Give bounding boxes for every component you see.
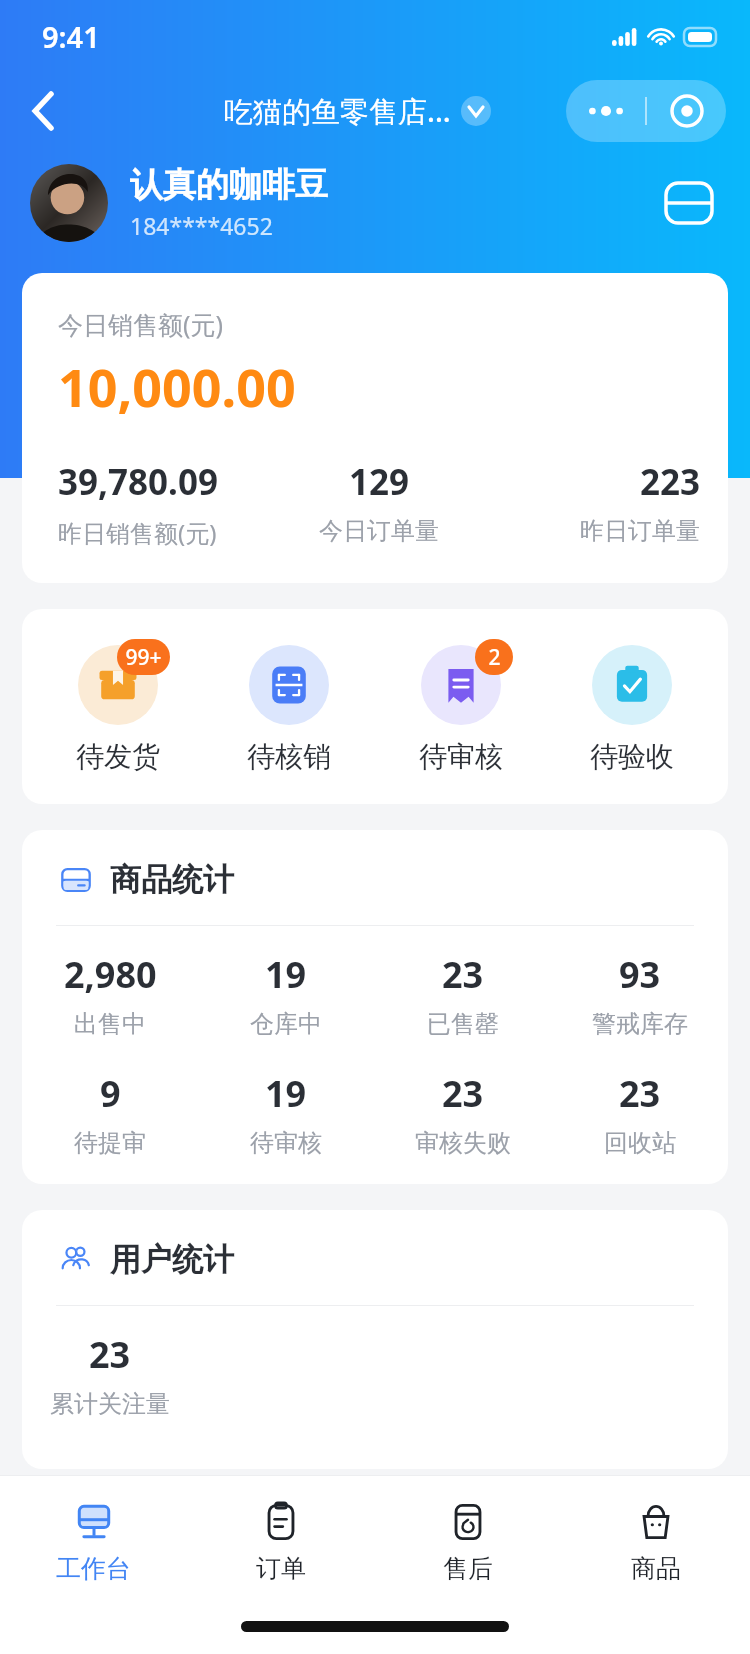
button[interactable]: 2 (386, 639, 536, 774)
button[interactable]: Back (16, 83, 72, 139)
staticText: 待核销 (247, 739, 331, 774)
staticText: 售后 (443, 1553, 493, 1584)
staticText: 9:41 (42, 17, 100, 56)
staticText: 订单 (256, 1553, 306, 1584)
staticText: 昨日订单量 (486, 516, 700, 546)
button[interactable]: More (566, 80, 645, 142)
staticText: 9 (100, 1069, 121, 1118)
staticText: 今日销售额(元) (58, 307, 224, 341)
button[interactable]: 23 (374, 950, 551, 1039)
staticText: 184****4652 (130, 210, 273, 241)
button[interactable]: 23 (22, 1330, 198, 1419)
button[interactable]: 待核销 (214, 639, 364, 774)
staticText: 2,980 (64, 950, 157, 999)
button[interactable]: 用户统计 (58, 1240, 692, 1279)
staticText: 10,000.00 (58, 351, 296, 422)
button[interactable]: 19 (198, 950, 374, 1039)
button[interactable]: Close (647, 80, 726, 142)
staticText: 已售罄 (427, 1009, 499, 1039)
button[interactable]: 23 (374, 1069, 551, 1158)
button[interactable]: 23 (551, 1069, 728, 1158)
staticText: 累计关注量 (50, 1389, 170, 1419)
staticText: 回收站 (604, 1128, 676, 1158)
button[interactable]: 待验收 (557, 639, 707, 774)
staticText: 2 (488, 643, 501, 672)
button[interactable]: 19 (198, 1069, 374, 1158)
staticText: 223 (486, 458, 700, 506)
staticText: 待审核 (419, 739, 503, 774)
staticText: 出售中 (74, 1009, 146, 1039)
staticText: 认真的咖啡豆 (130, 164, 328, 206)
button[interactable]: 9 (22, 1069, 198, 1158)
staticText: 审核失败 (415, 1128, 511, 1158)
staticText: 23 (619, 1069, 661, 1118)
button[interactable]: 99+ (43, 639, 193, 774)
staticText: 23 (89, 1330, 131, 1379)
staticText: 昨日销售额(元) (58, 516, 272, 549)
staticText: 工作台 (56, 1553, 131, 1584)
staticText: 待验收 (590, 739, 674, 774)
staticText: 129 (272, 458, 486, 506)
staticText: 93 (619, 950, 661, 999)
button[interactable]: Card (658, 172, 720, 234)
button[interactable]: 2,980 (22, 950, 198, 1039)
staticText: 吃猫的鱼零售店... (224, 91, 451, 131)
staticText: 23 (442, 1069, 484, 1118)
staticText: 99+ (125, 643, 162, 672)
staticText: 19 (265, 950, 307, 999)
staticText: 商品 (631, 1553, 681, 1584)
staticText: 39,780.09 (58, 458, 272, 506)
staticText: 待发货 (76, 739, 160, 774)
button[interactable]: 商品 (562, 1476, 750, 1606)
staticText: 19 (265, 1069, 307, 1118)
button[interactable]: 吃猫的鱼零售店... (224, 91, 491, 131)
staticText: 今日订单量 (272, 516, 486, 546)
button[interactable]: 商品统计 (58, 860, 692, 899)
staticText: 警戒库存 (592, 1009, 688, 1039)
staticText: 待审核 (250, 1128, 322, 1158)
button[interactable]: 今日销售额(元) (22, 273, 728, 583)
staticText: 商品统计 (110, 860, 234, 899)
staticText: 23 (442, 950, 484, 999)
button[interactable]: 93 (551, 950, 728, 1039)
staticText: 仓库中 (250, 1009, 322, 1039)
staticText: 用户统计 (110, 1240, 234, 1279)
staticText: 待提审 (74, 1128, 146, 1158)
button[interactable]: 售后 (374, 1476, 562, 1606)
button[interactable]: 工作台 (0, 1476, 187, 1606)
button[interactable]: 订单 (187, 1476, 374, 1606)
